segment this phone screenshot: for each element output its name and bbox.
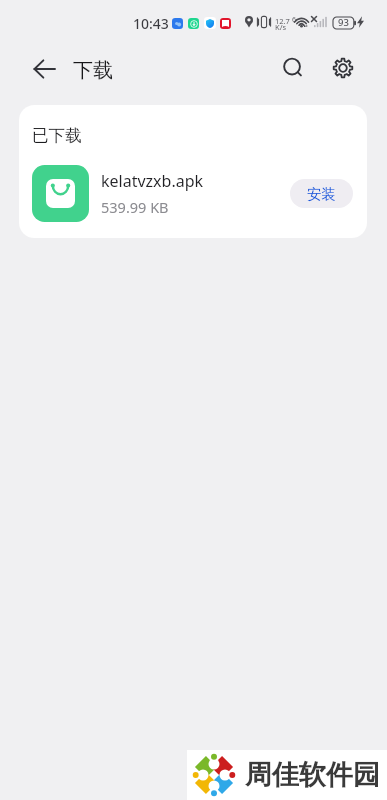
button[interactable]: Back <box>29 54 59 84</box>
staticText: 93 <box>338 16 349 29</box>
button[interactable]: kelatvzxb.apk <box>19 158 367 228</box>
button[interactable]: Search <box>277 52 309 84</box>
staticText: kelatvzxb.apk <box>101 170 204 192</box>
staticText: 下载 <box>73 58 113 83</box>
button[interactable]: Settings <box>327 52 359 84</box>
staticText: 安装 <box>307 185 336 203</box>
staticText: 已下载 <box>32 125 82 146</box>
staticText: K/s <box>275 22 287 32</box>
staticText: 10:43 <box>133 14 169 33</box>
staticText: 6 <box>292 15 297 25</box>
staticText: 周佳软件园 <box>245 758 380 792</box>
button[interactable]: 安装 <box>290 179 353 208</box>
staticText: 539.99 KB <box>101 197 169 217</box>
staticText: 12.7 <box>275 16 290 26</box>
